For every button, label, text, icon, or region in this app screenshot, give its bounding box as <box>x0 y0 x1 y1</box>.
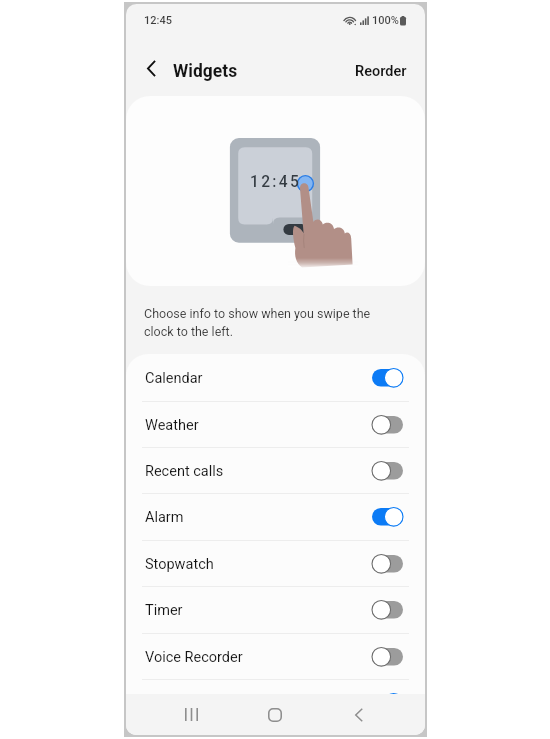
staticText: Recent calls <box>145 463 224 480</box>
button[interactable]: Stopwatch <box>126 540 425 586</box>
staticText: 12:45 <box>144 14 172 27</box>
button[interactable]: Recent calls <box>126 447 425 493</box>
button[interactable]: Weather <box>126 401 425 447</box>
staticText: Widgets <box>173 61 238 82</box>
staticText: Calendar <box>145 370 203 387</box>
staticText: Reorder <box>355 63 407 80</box>
staticText: Alarm <box>145 509 184 526</box>
button[interactable]: Voice Recorder <box>126 633 425 679</box>
button[interactable]: Home <box>250 694 300 735</box>
staticText: Choose info to show when you swipe the c… <box>144 306 371 339</box>
staticText: 100% <box>372 14 399 27</box>
button[interactable]: Recent apps <box>166 694 216 735</box>
button[interactable]: Reorder <box>350 60 412 83</box>
button[interactable]: Music <box>126 679 425 726</box>
staticText: Weather <box>145 417 199 434</box>
button[interactable]: Timer <box>126 586 425 633</box>
staticText: Timer <box>145 602 183 619</box>
staticText: Stopwatch <box>145 556 214 573</box>
staticText: 12:45 <box>250 173 302 191</box>
button[interactable]: Back <box>334 694 384 735</box>
button[interactable]: Calendar <box>126 354 425 401</box>
button[interactable]: Navigate up <box>135 52 167 84</box>
staticText: Voice Recorder <box>145 649 243 666</box>
button[interactable]: Alarm <box>126 493 425 540</box>
